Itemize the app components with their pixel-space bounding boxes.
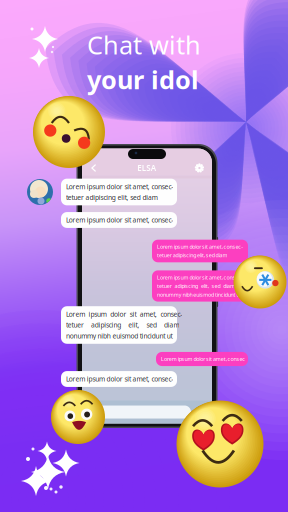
staticText: ELSA xyxy=(137,163,156,173)
button[interactable]: More xyxy=(195,406,207,418)
button[interactable]: Back xyxy=(88,161,100,175)
staticText: your idol xyxy=(87,62,199,96)
staticText: Lorem ipsum dolor sit amet, consec- xyxy=(66,216,173,224)
staticText: tetuer adipiscing elit, sed diam xyxy=(66,193,158,202)
staticText: Lorem ipsum dolor sit amet, consec- xyxy=(157,243,243,250)
staticText: tetuer adipiscing elit, sed diam xyxy=(157,282,235,290)
staticText: nonummy nibh euismod tincidunt ut xyxy=(66,331,173,340)
staticText: tetuer adipiscing elit, sed diam xyxy=(66,321,179,329)
staticText: Lorem ipsum dolor sit amet, consec- xyxy=(66,310,182,319)
staticText: Lorem ipsum dolor sit amet, consec- xyxy=(66,375,173,383)
staticText: Lorem ipsum dolor sit amet, consec- xyxy=(66,182,173,191)
staticText: Chat with xyxy=(87,28,201,61)
button[interactable]: Settings xyxy=(193,161,206,175)
staticText: Lorem ipsum dolor sit amet, consec xyxy=(161,355,245,363)
staticText: Lorem ipsum dolor sit amet, consec- xyxy=(157,274,243,281)
staticText: nonummy nibh euismod tincidunt ut xyxy=(157,291,241,298)
staticText: tetuer adipiscing elit, sed diam xyxy=(157,252,227,259)
